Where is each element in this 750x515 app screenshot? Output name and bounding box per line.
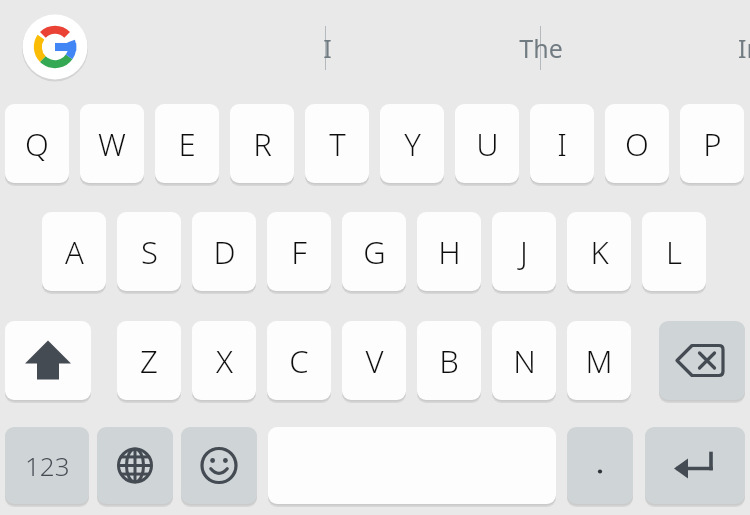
staticText: T xyxy=(329,123,346,165)
button[interactable]: F xyxy=(267,212,331,291)
staticText: Q xyxy=(25,123,49,165)
staticText: S xyxy=(141,231,158,273)
button[interactable]: U xyxy=(455,104,519,183)
button[interactable]: Numbers and symbols xyxy=(5,427,89,504)
staticText: E xyxy=(178,123,196,165)
button[interactable]: C xyxy=(267,321,331,400)
staticText: D xyxy=(213,231,236,273)
button[interactable]: Enter xyxy=(645,427,745,504)
staticText: U xyxy=(476,123,499,165)
button[interactable]: J xyxy=(492,212,556,291)
staticText: H xyxy=(438,231,461,273)
button[interactable]: Y xyxy=(380,104,444,183)
button[interactable]: X xyxy=(192,321,256,400)
button[interactable]: I xyxy=(110,10,545,86)
button[interactable]: B xyxy=(417,321,481,400)
button[interactable]: L xyxy=(642,212,706,291)
staticText: K xyxy=(590,231,609,273)
staticText: Z xyxy=(140,340,158,382)
button[interactable]: T xyxy=(305,104,369,183)
staticText: 123 xyxy=(25,448,70,483)
button[interactable]: S xyxy=(117,212,181,291)
button[interactable]: P xyxy=(680,104,744,183)
button[interactable]: The xyxy=(328,10,750,86)
button[interactable]: O xyxy=(605,104,669,183)
button[interactable]: M xyxy=(567,321,631,400)
staticText: G xyxy=(363,231,386,273)
button[interactable]: Shift xyxy=(5,321,91,400)
button[interactable]: Google xyxy=(22,14,88,80)
button[interactable]: W xyxy=(80,104,144,183)
staticText: B xyxy=(439,340,459,382)
button[interactable]: G xyxy=(342,212,406,291)
button[interactable]: Q xyxy=(5,104,69,183)
staticText: X xyxy=(216,340,233,382)
staticText: I xyxy=(557,123,567,165)
button[interactable]: Period xyxy=(567,427,633,504)
button[interactable]: R xyxy=(230,104,294,183)
button[interactable]: E xyxy=(155,104,219,183)
staticText: M xyxy=(585,340,613,382)
staticText: C xyxy=(289,340,309,382)
button[interactable]: Z xyxy=(117,321,181,400)
staticText: W xyxy=(98,123,126,165)
button[interactable]: Change language xyxy=(97,427,173,504)
button[interactable]: V xyxy=(342,321,406,400)
staticText: Y xyxy=(404,123,421,165)
button[interactable]: K xyxy=(567,212,631,291)
staticText: In xyxy=(738,31,750,65)
staticText: O xyxy=(625,123,649,165)
staticText: F xyxy=(291,231,307,273)
button[interactable]: I xyxy=(530,104,594,183)
staticText: N xyxy=(513,340,536,382)
staticText: P xyxy=(703,123,722,165)
staticText: I xyxy=(323,31,332,65)
button[interactable]: N xyxy=(492,321,556,400)
button[interactable]: Emoji xyxy=(181,427,257,504)
button[interactable]: D xyxy=(192,212,256,291)
staticText: J xyxy=(520,231,528,273)
button[interactable]: Backspace xyxy=(659,321,745,400)
staticText: R xyxy=(253,123,272,165)
staticText: The xyxy=(519,31,563,65)
staticText: L xyxy=(666,231,682,273)
button[interactable]: In xyxy=(540,10,750,86)
staticText: A xyxy=(65,231,84,273)
button[interactable]: A xyxy=(42,212,106,291)
button[interactable]: H xyxy=(417,212,481,291)
staticText: V xyxy=(365,340,384,382)
